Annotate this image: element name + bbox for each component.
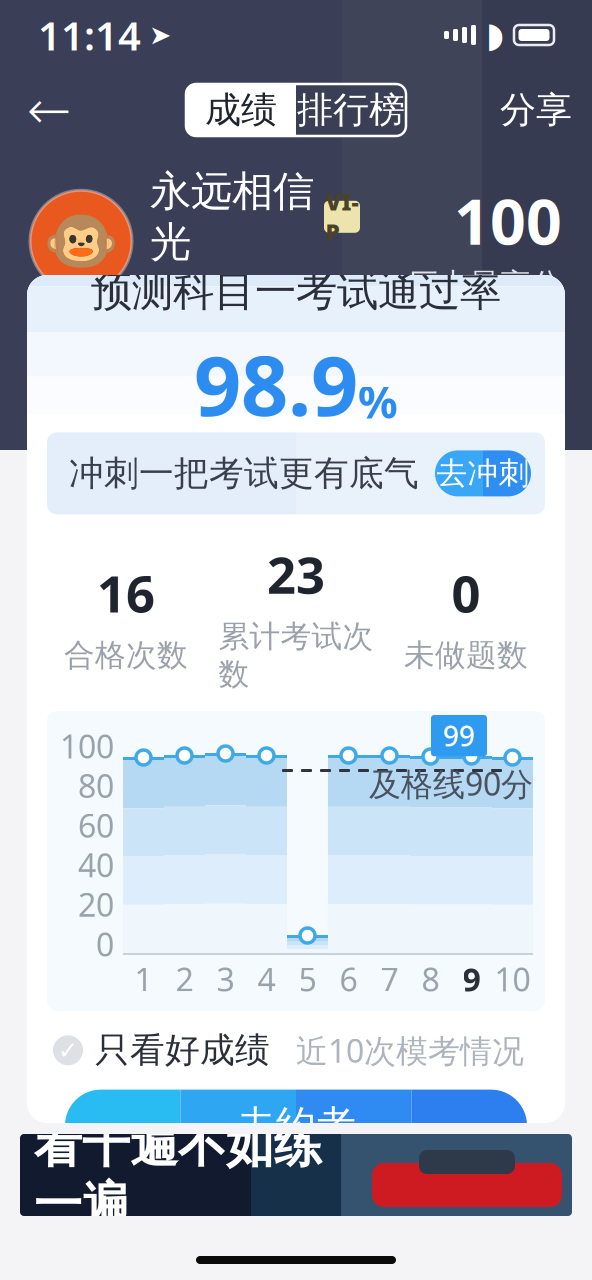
staticText: 10: [494, 958, 530, 1000]
staticText: 16: [97, 559, 155, 626]
staticText: 成绩: [205, 88, 277, 132]
staticText: ←: [26, 80, 71, 140]
staticText: 0: [451, 559, 480, 626]
button[interactable]: ✓: [53, 1029, 270, 1072]
staticText: ✓: [58, 1037, 78, 1064]
staticText: 预测科目一考试通过率: [91, 266, 501, 317]
staticText: 及格线90分: [369, 762, 533, 805]
staticText: 6: [339, 958, 357, 1000]
staticText: 80: [78, 764, 114, 807]
button[interactable]: 去冲刺: [435, 450, 531, 496]
staticText: 🐵: [43, 206, 119, 276]
staticText: 4: [257, 958, 275, 1000]
staticText: 99: [443, 717, 475, 754]
staticText: 合格次数: [64, 636, 188, 674]
staticText: 23: [267, 540, 325, 608]
staticText: 7: [380, 958, 398, 1000]
staticText: 0: [96, 923, 114, 965]
staticText: 分享: [500, 88, 572, 132]
staticText: 9: [462, 958, 480, 1000]
staticText: 40: [78, 844, 114, 886]
staticText: 近10次模考情况: [296, 1029, 524, 1072]
staticText: 未做题数: [404, 636, 528, 674]
staticText: 去冲刺: [436, 455, 529, 492]
staticText: 5: [298, 958, 316, 1000]
staticText: 60: [78, 804, 114, 846]
staticText: 阿里: [150, 275, 216, 316]
staticText: 1: [134, 958, 152, 1000]
button[interactable]: 去约考: [65, 1090, 527, 1162]
staticText: 100: [454, 179, 562, 262]
staticText: 累计考试次数: [218, 618, 373, 693]
staticText: 只看好成绩: [95, 1029, 270, 1072]
staticText: 排行榜: [297, 88, 405, 132]
staticText: 3: [216, 958, 234, 1000]
staticText: 8: [421, 958, 439, 1000]
staticText: 历史最高分: [407, 266, 562, 304]
staticText: 20: [78, 883, 114, 926]
staticText: %: [358, 372, 398, 431]
staticText: 11:14: [38, 8, 141, 61]
staticText: 100: [60, 725, 114, 767]
staticText: VIP: [325, 187, 358, 247]
button[interactable]: 排行榜: [296, 84, 406, 136]
staticText: 冲刺一把考试更有底气: [69, 452, 419, 495]
staticText: 2: [175, 958, 193, 1000]
staticText: ➤: [149, 20, 171, 50]
button[interactable]: 分享: [494, 80, 578, 140]
button[interactable]: 成绩: [186, 84, 296, 136]
staticText: 看十遍不如练一遍: [34, 1116, 322, 1234]
button[interactable]: 看十遍不如练一遍 广告: [20, 1134, 572, 1216]
staticText: 去约考: [236, 1101, 356, 1150]
staticText: 永远相信光: [150, 166, 314, 267]
button[interactable]: 返回: [14, 80, 84, 140]
staticText: ◗: [486, 15, 504, 55]
staticText: 98.9: [194, 329, 358, 439]
